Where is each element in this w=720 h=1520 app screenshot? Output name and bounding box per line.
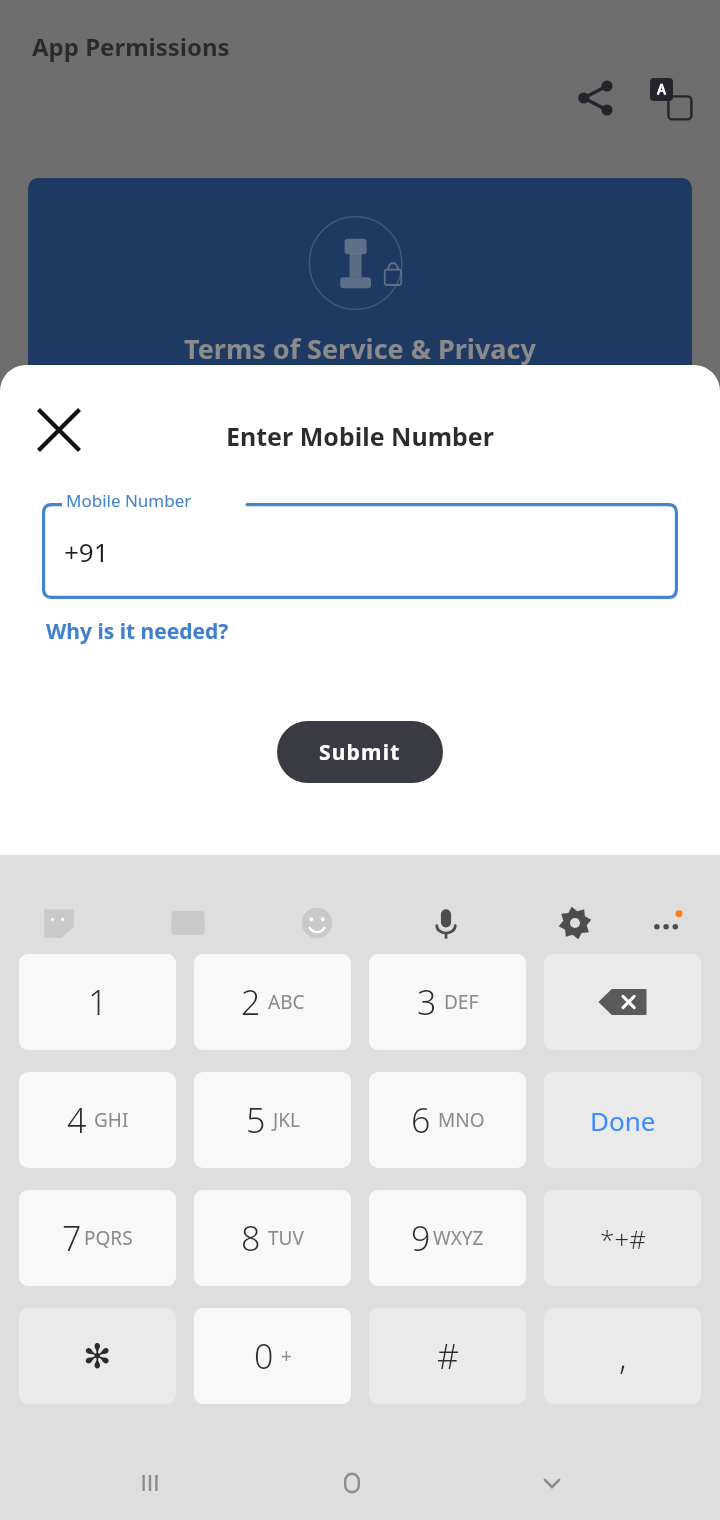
button[interactable]: 1 xyxy=(19,954,176,1050)
button[interactable]: More options xyxy=(644,900,700,956)
staticText: Submit xyxy=(319,738,401,767)
staticText: # xyxy=(437,1333,459,1379)
button[interactable]: Emoji xyxy=(294,900,350,956)
staticText: TUV xyxy=(268,1225,304,1251)
staticText: Done xyxy=(590,1103,656,1138)
staticText: + xyxy=(281,1343,292,1369)
staticText: *+# xyxy=(600,1221,646,1256)
button[interactable]: Voice input xyxy=(423,900,479,956)
staticText: Enter Mobile Number xyxy=(226,419,494,453)
staticText: Terms of Service & Privacy xyxy=(184,330,536,367)
button[interactable]: Hide keyboard xyxy=(532,1463,588,1519)
button[interactable]: Done xyxy=(544,1072,701,1168)
staticText: 7 xyxy=(62,1215,82,1261)
button[interactable]: , xyxy=(544,1308,701,1404)
staticText: ✻ xyxy=(83,1336,112,1376)
button[interactable]: Submit xyxy=(277,721,443,783)
button[interactable]: Home xyxy=(332,1463,388,1519)
staticText: , xyxy=(619,1333,627,1379)
button[interactable]: 5 xyxy=(194,1072,351,1168)
staticText: DEF xyxy=(444,989,479,1015)
staticText: ABC xyxy=(268,989,305,1015)
staticText: App Permissions xyxy=(32,30,230,63)
staticText: Mobile Number xyxy=(66,489,192,512)
staticText: 2 xyxy=(241,979,261,1025)
staticText: MNO xyxy=(438,1107,485,1133)
staticText: 0 xyxy=(254,1333,274,1379)
staticText: +91 xyxy=(64,534,109,569)
button[interactable]: 2 xyxy=(194,954,351,1050)
staticText: 8 xyxy=(241,1215,261,1261)
button[interactable]: 0 xyxy=(194,1308,351,1404)
button[interactable]: GIF xyxy=(165,900,221,956)
staticText: 4 xyxy=(67,1097,87,1143)
button[interactable]: 7 xyxy=(19,1190,176,1286)
staticText: 3 xyxy=(417,979,437,1025)
staticText: Why is it needed? xyxy=(46,617,229,646)
button[interactable]: Close xyxy=(40,411,98,469)
button[interactable]: *+# xyxy=(544,1190,701,1286)
button[interactable]: Stickers xyxy=(36,900,92,956)
button[interactable]: Settings xyxy=(552,900,608,956)
button[interactable]: Recents xyxy=(130,1463,186,1519)
staticText: JKL xyxy=(273,1107,300,1133)
button[interactable]: 6 xyxy=(369,1072,526,1168)
button[interactable]: 4 xyxy=(19,1072,176,1168)
staticText: PQRS xyxy=(84,1225,133,1251)
staticText: WXYZ xyxy=(433,1225,484,1251)
staticText: 9 xyxy=(411,1215,431,1261)
staticText: 02:30 xyxy=(38,15,87,41)
button[interactable]: Backspace xyxy=(544,954,701,1050)
button[interactable]: # xyxy=(369,1308,526,1404)
staticText: 5 xyxy=(246,1097,266,1143)
button[interactable]: ✻ xyxy=(19,1308,176,1404)
staticText: 1 xyxy=(88,979,108,1025)
staticText: GHI xyxy=(94,1107,129,1133)
button[interactable]: 8 xyxy=(194,1190,351,1286)
button[interactable]: Why is it needed? xyxy=(42,613,233,650)
staticText: 6 xyxy=(411,1097,431,1143)
button[interactable]: 3 xyxy=(369,954,526,1050)
button[interactable]: 9 xyxy=(369,1190,526,1286)
